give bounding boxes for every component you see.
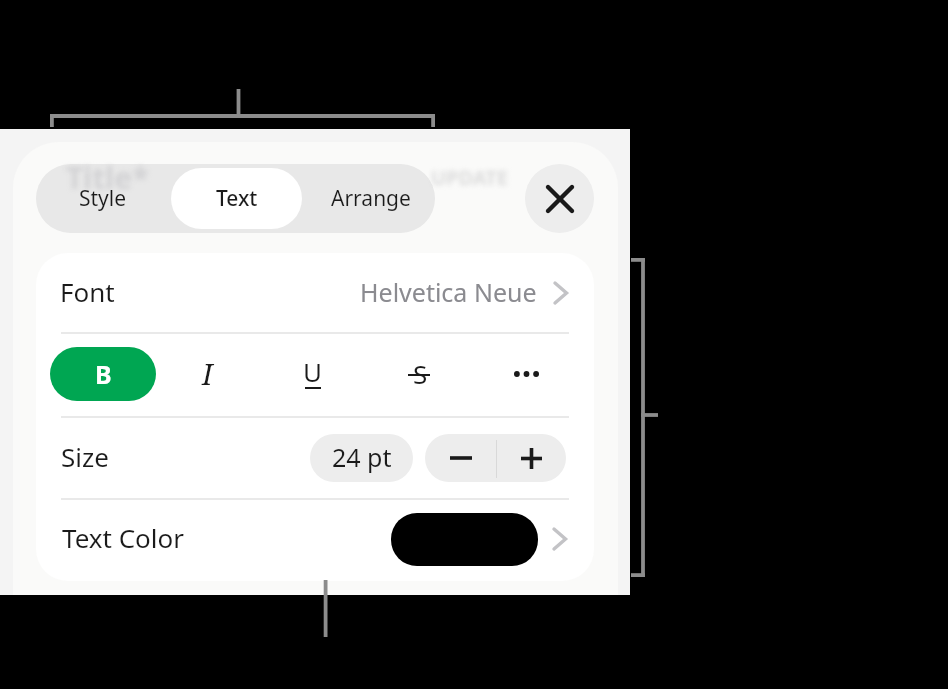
staticText: S <box>413 356 428 391</box>
staticText: Font <box>60 274 115 309</box>
staticText: Arrange <box>331 184 411 213</box>
button[interactable]: Underline <box>285 347 341 401</box>
button[interactable]: Italic <box>180 347 236 401</box>
staticText: Size <box>61 439 109 474</box>
staticText: Helvetica Neue <box>360 275 537 309</box>
button[interactable]: Decrease font size <box>425 434 496 482</box>
staticText: Text <box>216 184 258 213</box>
button[interactable]: Increase font size <box>496 434 566 482</box>
button[interactable]: 24 pt <box>310 434 413 482</box>
button[interactable]: Strikethrough <box>391 347 447 401</box>
staticText: Style <box>79 184 127 213</box>
button[interactable]: Size <box>36 417 594 498</box>
staticText: Title* <box>66 157 149 198</box>
button[interactable]: Text Color <box>36 499 594 577</box>
staticText: B <box>95 357 112 391</box>
staticText: I <box>202 354 213 393</box>
button[interactable]: More <box>498 347 554 401</box>
button[interactable]: B <box>50 347 156 401</box>
button[interactable]: Text <box>171 168 302 229</box>
button[interactable]: Arrange <box>302 164 435 233</box>
button[interactable]: Font <box>36 253 594 333</box>
staticText: Text Color <box>62 520 185 555</box>
button[interactable]: Close <box>525 164 594 233</box>
staticText: 24 pt <box>332 440 392 474</box>
button[interactable]: Style <box>36 164 169 233</box>
staticText: U <box>303 354 323 389</box>
staticText: UPDATE <box>431 164 508 191</box>
